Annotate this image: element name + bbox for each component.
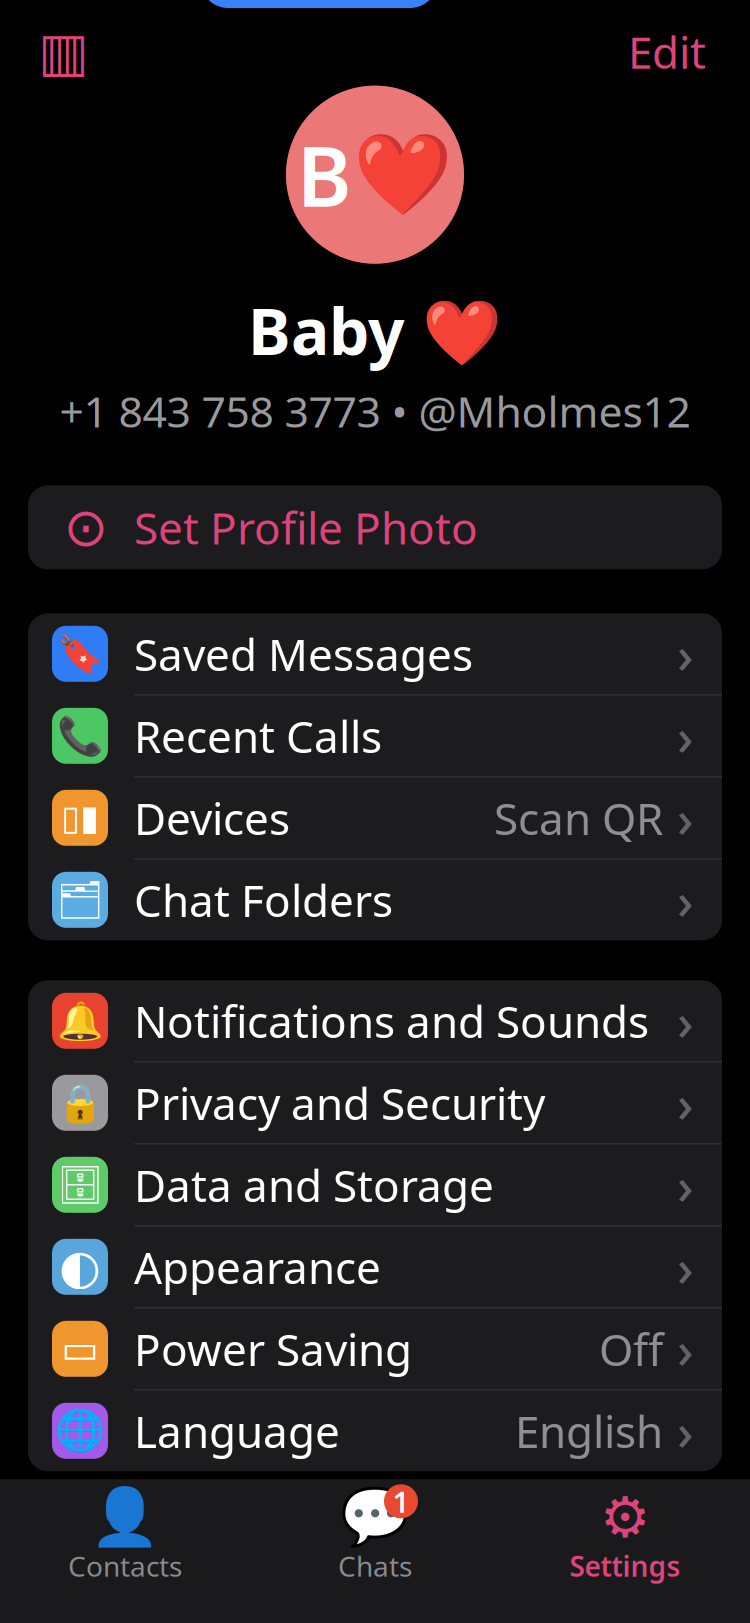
- staticText: ›: [677, 1069, 694, 1136]
- staticText: Baby ❤️: [248, 288, 502, 373]
- staticText: Settings: [569, 1547, 680, 1584]
- staticText: Language: [134, 1402, 340, 1460]
- staticText: 🗂: [56, 878, 103, 921]
- staticText: B: [297, 120, 351, 230]
- button[interactable]: ⊙: [28, 485, 722, 569]
- button[interactable]: 🔔: [28, 980, 722, 1061]
- staticText: ◐: [59, 1240, 101, 1294]
- button[interactable]: Edit: [618, 22, 716, 82]
- button[interactable]: 💬: [250, 1493, 500, 1584]
- staticText: ▯▮: [61, 798, 99, 837]
- staticText: Contacts: [68, 1547, 182, 1584]
- staticText: 🔔: [57, 999, 103, 1042]
- staticText: Data and Storage: [134, 1156, 494, 1214]
- staticText: ›: [677, 784, 694, 851]
- staticText: ▥: [38, 21, 88, 82]
- staticText: Devices: [134, 789, 290, 847]
- staticText: ›: [677, 1233, 694, 1300]
- staticText: Notifications and Sounds: [134, 992, 649, 1050]
- staticText: Set Profile Photo: [134, 498, 478, 556]
- staticText: 1: [392, 1482, 409, 1521]
- staticText: ›: [677, 1151, 694, 1218]
- staticText: ›: [677, 702, 694, 769]
- staticText: Appearance: [134, 1238, 381, 1296]
- button[interactable]: Scan QR code: [30, 22, 96, 82]
- staticText: ›: [677, 1315, 694, 1382]
- staticText: ⚙: [600, 1485, 650, 1549]
- button[interactable]: ▯▮: [28, 777, 722, 858]
- button[interactable]: 🔖: [28, 613, 722, 694]
- button[interactable]: 🗂: [28, 859, 722, 940]
- staticText: 👤: [90, 1485, 160, 1549]
- staticText: 🔒: [57, 1081, 103, 1124]
- staticText: Chats: [338, 1547, 412, 1584]
- staticText: English: [515, 1402, 663, 1460]
- staticText: +1 843 758 3773 • @Mholmes12: [59, 383, 690, 439]
- staticText: Power Saving: [134, 1320, 412, 1378]
- button[interactable]: 📞: [28, 695, 722, 776]
- staticText: 🔖: [57, 632, 103, 675]
- staticText: 🗄: [56, 1163, 103, 1206]
- staticText: 📞: [57, 714, 103, 757]
- staticText: ›: [677, 987, 694, 1054]
- staticText: ›: [677, 866, 694, 933]
- staticText: Saved Messages: [134, 625, 473, 683]
- staticText: Off: [599, 1320, 663, 1378]
- staticText: ›: [677, 620, 694, 687]
- button[interactable]: 🗄: [28, 1144, 722, 1225]
- staticText: ▭: [61, 1326, 99, 1371]
- staticText: Edit: [628, 22, 706, 81]
- button[interactable]: ◐: [28, 1226, 722, 1307]
- button[interactable]: 🌐: [28, 1390, 722, 1471]
- button[interactable]: 🔒: [28, 1062, 722, 1143]
- button[interactable]: ⚙: [500, 1493, 750, 1584]
- button[interactable]: ▭: [28, 1308, 722, 1389]
- staticText: Chat Folders: [134, 871, 393, 929]
- staticText: ❤️: [353, 129, 453, 220]
- staticText: 🌐: [55, 1408, 105, 1454]
- staticText: ⊙: [63, 497, 108, 558]
- staticText: ›: [677, 1397, 694, 1464]
- button[interactable]: 👤: [0, 1493, 250, 1584]
- staticText: Scan QR: [494, 789, 663, 847]
- staticText: Privacy and Security: [134, 1074, 545, 1132]
- staticText: Recent Calls: [134, 707, 382, 765]
- staticText: 💬: [340, 1485, 410, 1549]
